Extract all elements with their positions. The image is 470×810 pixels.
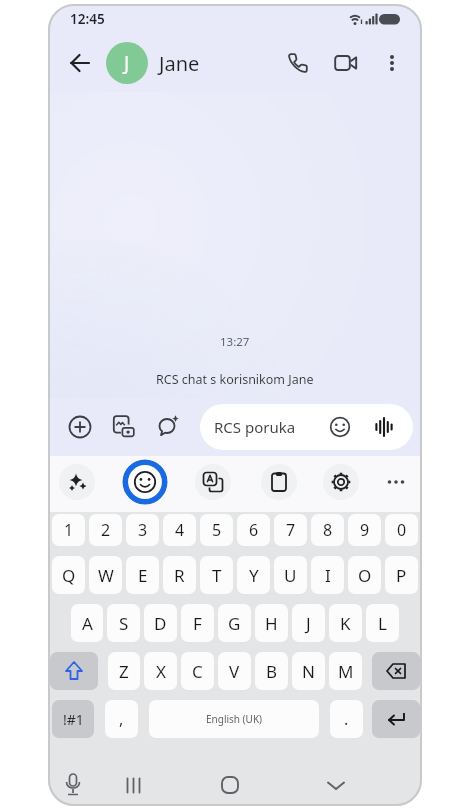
staticText: E	[138, 564, 148, 587]
button[interactable]: K	[329, 604, 362, 642]
button[interactable]: N	[292, 652, 325, 690]
staticText: L	[378, 612, 387, 635]
button[interactable]: P	[385, 556, 418, 594]
staticText: S	[119, 612, 129, 635]
button[interactable]: V	[218, 652, 251, 690]
button[interactable]: C	[181, 652, 214, 690]
button[interactable]	[122, 459, 168, 505]
button[interactable]: Y	[237, 556, 270, 594]
button[interactable]: J	[106, 42, 276, 84]
staticText: 8	[323, 519, 333, 541]
button[interactable]: 8	[311, 514, 344, 546]
staticText: J	[124, 50, 130, 76]
button[interactable]: 1	[52, 514, 85, 546]
button[interactable]	[52, 764, 92, 804]
button[interactable]	[276, 41, 320, 85]
staticText: D	[154, 612, 167, 635]
staticText: U	[284, 564, 297, 587]
button[interactable]: English (UK)	[149, 700, 319, 738]
button[interactable]	[324, 41, 368, 85]
button[interactable]: A	[71, 604, 103, 642]
button[interactable]: 7	[274, 514, 307, 546]
button[interactable]	[372, 43, 412, 83]
staticText: F	[193, 612, 202, 635]
button[interactable]: Z	[108, 652, 140, 690]
button[interactable]	[60, 43, 100, 83]
staticText: 3	[138, 519, 148, 541]
button[interactable]	[323, 464, 359, 500]
staticText: 4	[175, 519, 185, 541]
button[interactable]: U	[274, 556, 307, 594]
staticText: 2	[101, 519, 111, 541]
staticText: RCS chat s korisnikom Jane	[156, 371, 314, 388]
staticText: B	[266, 660, 278, 683]
staticText: RCS poruka	[214, 417, 296, 437]
button[interactable]: L	[366, 604, 399, 642]
staticText: !#1	[63, 710, 84, 729]
button[interactable]: G	[218, 604, 251, 642]
staticText: R	[174, 564, 185, 587]
staticText: Z	[119, 660, 129, 683]
button[interactable]	[109, 761, 157, 806]
button[interactable]	[323, 410, 357, 444]
button[interactable]: 3	[126, 514, 159, 546]
staticText: N	[302, 660, 315, 683]
staticText: O	[358, 564, 372, 587]
staticText: English (UK)	[206, 712, 263, 726]
button[interactable]: ,	[105, 700, 138, 738]
button[interactable]: 0	[385, 514, 418, 546]
button[interactable]: J	[292, 604, 325, 642]
button[interactable]	[372, 700, 420, 738]
staticText: ,	[119, 708, 124, 730]
staticText: Y	[249, 564, 259, 587]
button[interactable]	[58, 405, 102, 449]
staticText: 0	[397, 519, 407, 541]
button[interactable]	[206, 761, 254, 806]
button[interactable]: M	[329, 652, 362, 690]
button[interactable]: T	[200, 556, 233, 594]
staticText: A	[82, 612, 93, 635]
staticText: P	[396, 564, 407, 587]
button[interactable]: E	[126, 556, 159, 594]
staticText: T	[212, 564, 222, 587]
staticText: 13:27	[220, 334, 250, 350]
staticText: Q	[62, 564, 76, 587]
button[interactable]: S	[107, 604, 140, 642]
button[interactable]: W	[89, 556, 122, 594]
staticText: Jane	[159, 50, 200, 77]
staticText: J	[306, 612, 311, 635]
button[interactable]: Q	[52, 556, 85, 594]
button[interactable]	[102, 405, 146, 449]
staticText: K	[340, 612, 351, 635]
staticText: H	[265, 612, 278, 635]
button[interactable]: R	[163, 556, 196, 594]
button[interactable]: 5	[200, 514, 233, 546]
button[interactable]: F	[181, 604, 214, 642]
button[interactable]: H	[255, 604, 288, 642]
button[interactable]: 4	[163, 514, 196, 546]
button[interactable]	[369, 412, 399, 442]
button[interactable]: 6	[237, 514, 270, 546]
button[interactable]	[59, 464, 95, 500]
button[interactable]	[195, 464, 231, 500]
button[interactable]: RCS poruka	[200, 404, 413, 450]
button[interactable]	[146, 405, 190, 449]
staticText: V	[229, 660, 240, 683]
button[interactable]: B	[255, 652, 288, 690]
button[interactable]: 9	[348, 514, 381, 546]
button[interactable]	[261, 464, 297, 500]
button[interactable]	[312, 761, 360, 806]
button[interactable]: X	[144, 652, 177, 690]
button[interactable]	[50, 652, 98, 690]
button[interactable]: .	[330, 700, 363, 738]
button[interactable]: !#1	[52, 700, 94, 738]
button[interactable]	[372, 652, 420, 690]
button[interactable]: D	[144, 604, 177, 642]
staticText: 5	[212, 519, 222, 541]
staticText: 12:45	[70, 10, 105, 28]
button[interactable]: 2	[89, 514, 122, 546]
button[interactable]: O	[348, 556, 381, 594]
button[interactable]: I	[311, 556, 344, 594]
staticText: G	[228, 612, 241, 635]
button[interactable]	[376, 462, 416, 502]
